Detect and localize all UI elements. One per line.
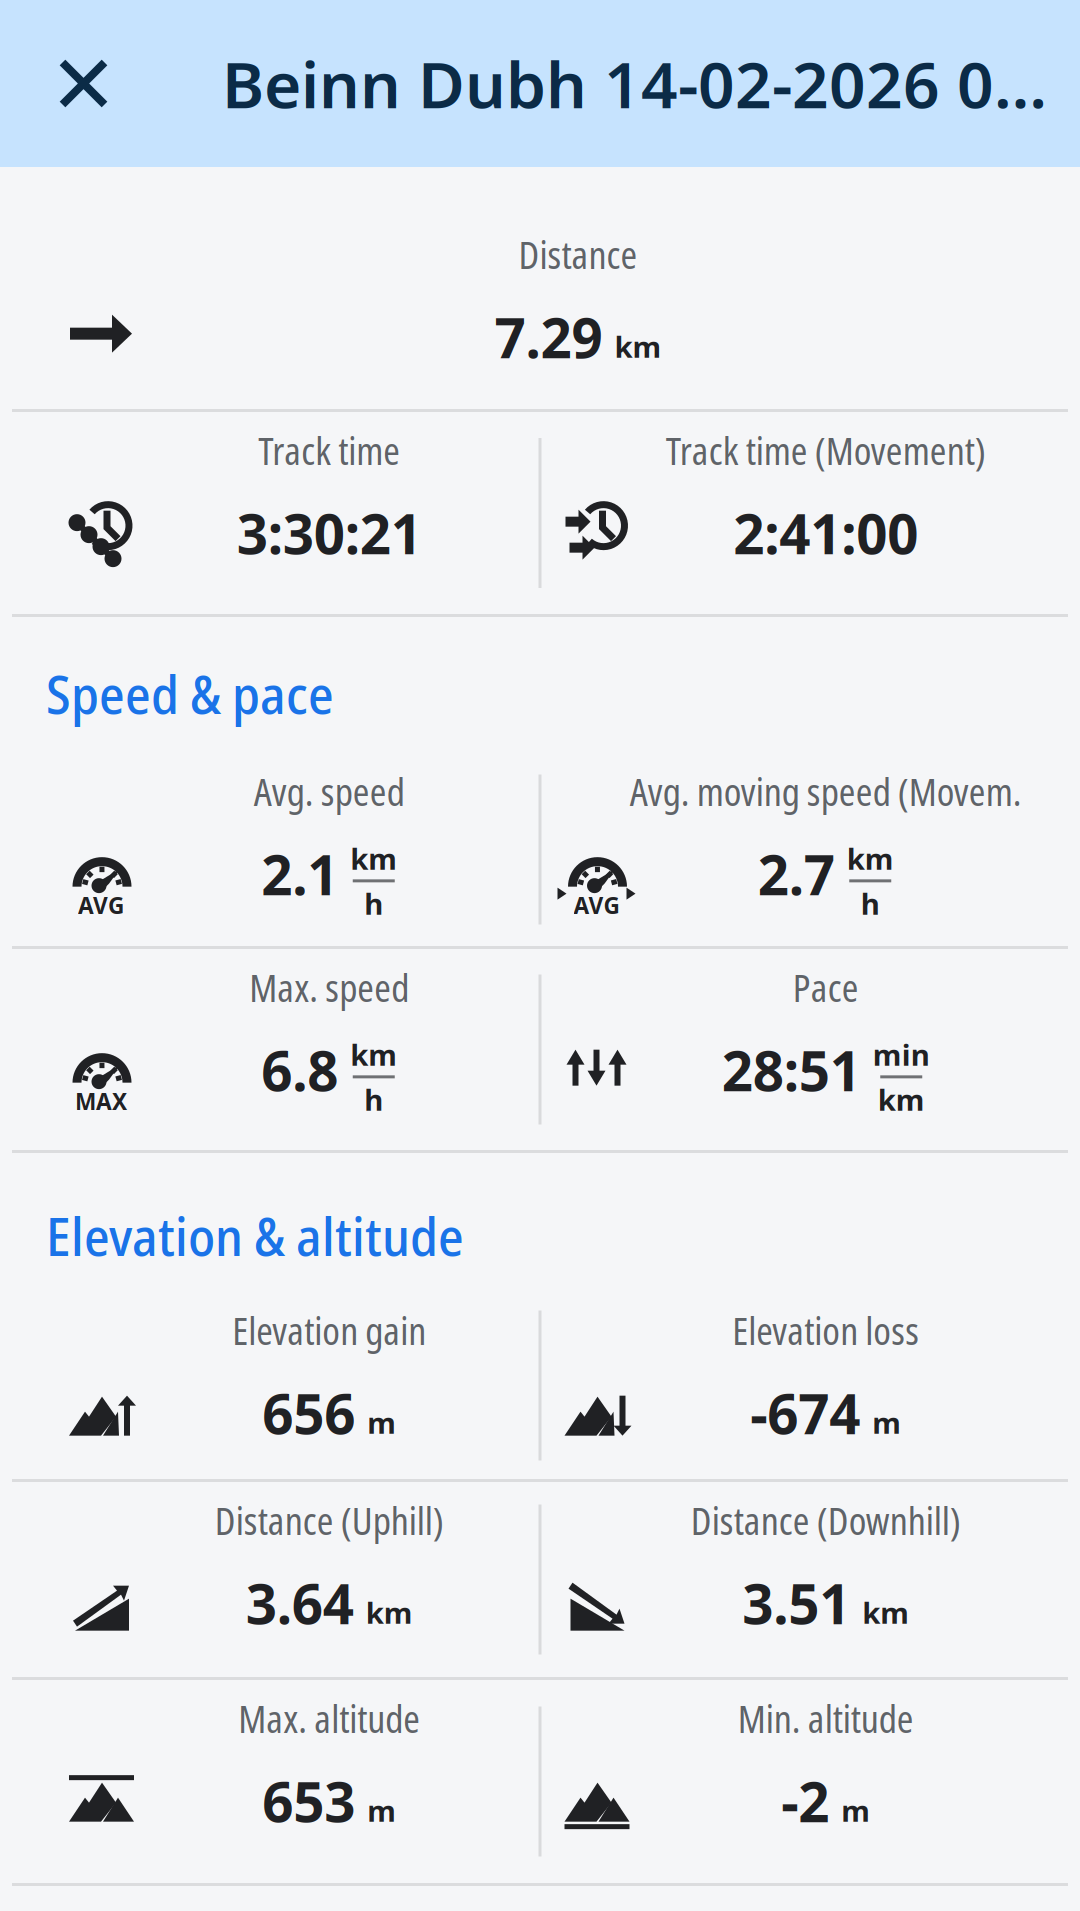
staticText: Elevation & altitude bbox=[46, 1199, 464, 1272]
staticText: km bbox=[366, 1592, 413, 1632]
staticText: h bbox=[861, 883, 880, 923]
staticText: -2 bbox=[781, 1764, 829, 1838]
staticText: Track time bbox=[258, 425, 400, 476]
staticText: Avg. speed bbox=[254, 766, 405, 817]
staticText: Max. altitude bbox=[238, 1693, 420, 1744]
staticText: 7.29 bbox=[494, 300, 602, 374]
staticText: h bbox=[364, 883, 383, 923]
staticText: km bbox=[878, 1079, 925, 1119]
staticText: Min. altitude bbox=[738, 1693, 914, 1744]
staticText: Distance bbox=[518, 229, 637, 280]
staticText: Distance (Uphill) bbox=[215, 1495, 444, 1546]
staticText: km bbox=[862, 1592, 909, 1632]
staticText: h bbox=[364, 1079, 383, 1119]
staticText: AVG bbox=[78, 890, 124, 921]
staticText: m bbox=[367, 1402, 396, 1442]
staticText: MAX bbox=[75, 1086, 127, 1117]
staticText: 28:51 bbox=[722, 1033, 861, 1107]
staticText: Beinn Dubh 14-02-2026 0… bbox=[222, 40, 1047, 127]
staticText: Elevation loss bbox=[732, 1305, 919, 1356]
staticText: AVG bbox=[573, 890, 619, 921]
staticText: m bbox=[367, 1790, 396, 1830]
staticText: m bbox=[841, 1790, 870, 1830]
staticText: -674 bbox=[750, 1376, 860, 1450]
staticText: 2.1 bbox=[261, 837, 338, 911]
button[interactable]: Close bbox=[0, 0, 167, 167]
staticText: 656 bbox=[262, 1376, 355, 1450]
staticText: Track time (Movement) bbox=[666, 425, 986, 476]
staticText: 3.64 bbox=[246, 1566, 354, 1640]
staticText: km bbox=[350, 1034, 397, 1074]
staticText: 2:41:00 bbox=[733, 496, 918, 570]
staticText: Max. speed bbox=[249, 962, 409, 1013]
staticText: m bbox=[872, 1402, 901, 1442]
staticText: Avg. moving speed (Movem. bbox=[630, 766, 1022, 817]
staticText: km bbox=[350, 838, 397, 878]
staticText: Pace bbox=[793, 962, 859, 1013]
staticText: km bbox=[614, 326, 661, 366]
staticText: Elevation gain bbox=[232, 1305, 426, 1356]
staticText: min bbox=[873, 1034, 930, 1074]
staticText: km bbox=[847, 838, 894, 878]
staticText: 3.51 bbox=[742, 1566, 850, 1640]
staticText: 2.7 bbox=[758, 837, 835, 911]
staticText: Speed & pace bbox=[46, 657, 334, 730]
staticText: 653 bbox=[262, 1764, 355, 1838]
staticText: Distance (Downhill) bbox=[691, 1495, 961, 1546]
staticText: 3:30:21 bbox=[237, 496, 422, 570]
staticText: 6.8 bbox=[261, 1033, 338, 1107]
